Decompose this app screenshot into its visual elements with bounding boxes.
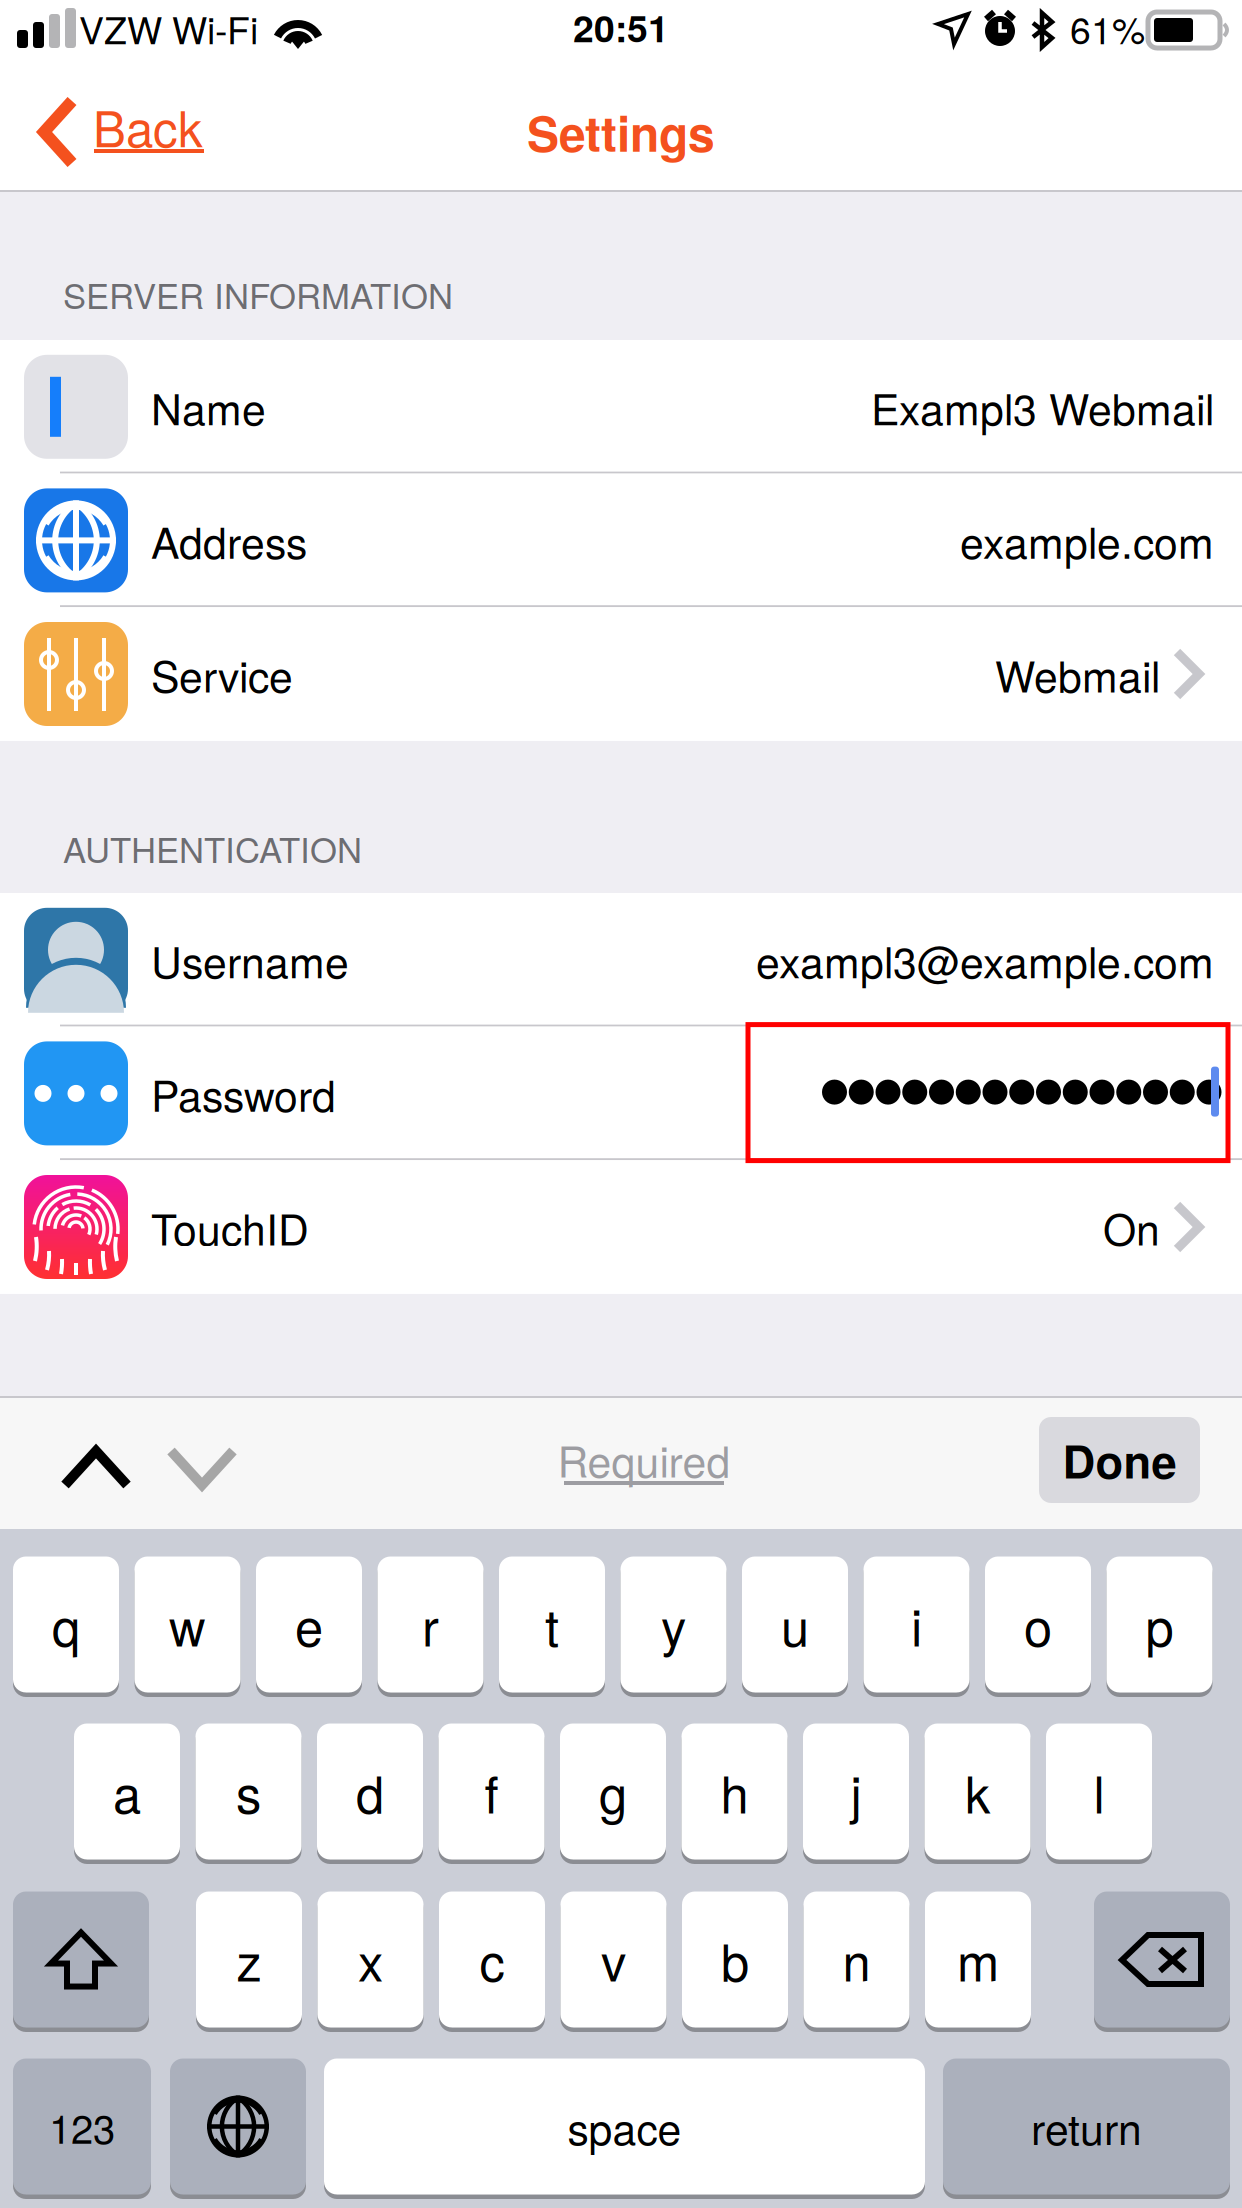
staticText: s xyxy=(236,1755,261,1828)
button[interactable]: v xyxy=(560,1889,666,2030)
button[interactable]: a xyxy=(74,1721,180,1862)
button[interactable]: z xyxy=(196,1889,302,2030)
button[interactable]: Service xyxy=(0,607,1242,741)
staticText: p xyxy=(1145,1588,1173,1661)
staticText: Name xyxy=(151,376,266,437)
staticText: o xyxy=(1024,1588,1052,1661)
staticText: v xyxy=(601,1923,626,1996)
staticText: d xyxy=(356,1755,384,1828)
button[interactable]: t xyxy=(499,1554,605,1695)
button[interactable] xyxy=(1094,1889,1230,2030)
button[interactable]: h xyxy=(681,1721,787,1862)
staticText: 61% xyxy=(1070,1,1145,55)
staticText: y xyxy=(661,1588,686,1661)
button[interactable]: x xyxy=(317,1889,423,2030)
button[interactable]: Address xyxy=(0,474,1242,607)
staticText: x xyxy=(358,1923,383,1996)
button[interactable]: Username xyxy=(0,893,1242,1027)
button[interactable]: Done xyxy=(1039,1417,1200,1503)
staticText: Back xyxy=(93,91,203,161)
staticText: t xyxy=(545,1588,559,1661)
staticText: Password xyxy=(151,1063,336,1124)
staticText: w xyxy=(169,1588,206,1661)
staticText: example.com xyxy=(960,510,1214,571)
staticText: r xyxy=(422,1588,439,1661)
button[interactable] xyxy=(170,2056,306,2197)
button[interactable]: w xyxy=(134,1554,240,1695)
staticText: i xyxy=(911,1588,922,1661)
staticText: space xyxy=(567,2096,681,2157)
button[interactable]: k xyxy=(924,1721,1030,1862)
staticText: Required xyxy=(557,1428,730,1490)
staticText: Username xyxy=(151,929,349,990)
staticText: AUTHENTICATION xyxy=(63,823,362,873)
staticText: q xyxy=(52,1588,80,1661)
button[interactable]: 123 xyxy=(13,2056,151,2197)
staticText: j xyxy=(850,1755,861,1828)
staticText: Settings xyxy=(527,98,715,166)
button[interactable] xyxy=(13,1889,149,2030)
button[interactable]: y xyxy=(620,1554,726,1695)
staticText: On xyxy=(1103,1196,1160,1258)
button[interactable]: Next field xyxy=(132,1406,262,1519)
staticText: l xyxy=(1093,1755,1104,1828)
button[interactable]: Name xyxy=(0,340,1242,474)
button[interactable]: Password xyxy=(0,1027,1242,1160)
button[interactable]: c xyxy=(439,1889,545,2030)
staticText: exampl3@example.com xyxy=(756,929,1214,990)
staticText: n xyxy=(842,1923,870,1996)
staticText: u xyxy=(781,1588,809,1661)
button[interactable]: j xyxy=(803,1721,909,1862)
staticText: f xyxy=(484,1755,498,1828)
button[interactable]: Back xyxy=(14,80,234,184)
button[interactable]: p xyxy=(1106,1554,1212,1695)
button[interactable]: o xyxy=(985,1554,1091,1695)
button[interactable]: e xyxy=(256,1554,362,1695)
button[interactable]: i xyxy=(863,1554,969,1695)
staticText: h xyxy=(720,1755,748,1828)
button[interactable]: q xyxy=(13,1554,119,1695)
staticText: g xyxy=(599,1755,627,1828)
staticText: Done xyxy=(1062,1427,1176,1492)
staticText: Webmail xyxy=(995,643,1160,705)
button[interactable]: return xyxy=(943,2056,1230,2197)
staticText: 123 xyxy=(49,2098,115,2155)
staticText: b xyxy=(721,1923,749,1996)
button[interactable]: Previous field xyxy=(26,1406,156,1519)
staticText: Address xyxy=(151,510,307,571)
button[interactable]: d xyxy=(317,1721,423,1862)
staticText: TouchID xyxy=(151,1196,309,1258)
staticText: k xyxy=(965,1755,990,1828)
button[interactable]: g xyxy=(560,1721,666,1862)
staticText: return xyxy=(1031,2096,1142,2157)
staticText: e xyxy=(295,1588,323,1661)
staticText: z xyxy=(236,1923,261,1996)
button[interactable]: b xyxy=(682,1889,788,2030)
button[interactable]: r xyxy=(377,1554,483,1695)
button[interactable]: TouchID xyxy=(0,1160,1242,1294)
button[interactable]: m xyxy=(925,1889,1031,2030)
button[interactable]: s xyxy=(195,1721,301,1862)
staticText: SERVER INFORMATION xyxy=(63,269,453,319)
staticText: a xyxy=(113,1755,141,1828)
staticText: c xyxy=(479,1923,504,1996)
staticText: m xyxy=(957,1923,999,1996)
staticText: Exampl3 Webmail xyxy=(871,376,1214,437)
button[interactable]: n xyxy=(803,1889,909,2030)
button[interactable]: l xyxy=(1046,1721,1152,1862)
staticText: Service xyxy=(151,643,293,705)
staticText: VZW Wi-Fi xyxy=(79,1,258,55)
staticText: 20:51 xyxy=(573,0,669,54)
button[interactable]: u xyxy=(742,1554,848,1695)
button[interactable]: f xyxy=(438,1721,544,1862)
button[interactable]: space xyxy=(324,2056,925,2197)
